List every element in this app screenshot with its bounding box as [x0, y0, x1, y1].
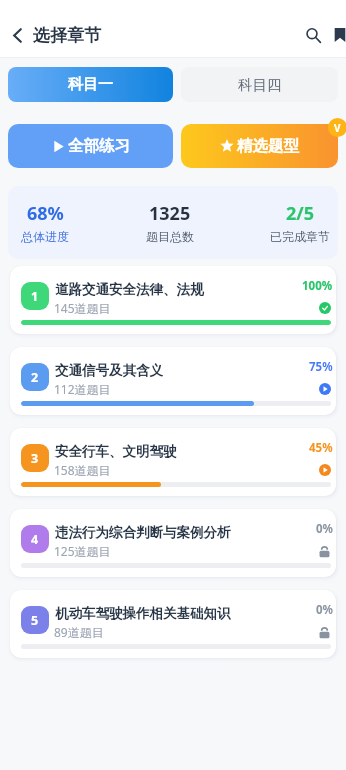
- staticText: 总体进度: [21, 229, 69, 244]
- staticText: 选择章节: [33, 25, 101, 46]
- staticText: 45%: [309, 440, 333, 456]
- staticText: 89道题目: [54, 624, 104, 640]
- staticText: 158道题目: [54, 462, 111, 478]
- staticText: 科目一: [68, 75, 113, 94]
- button[interactable]: 1: [10, 266, 336, 334]
- button[interactable]: 科目四: [181, 67, 338, 102]
- button[interactable]: Back: [2, 20, 32, 50]
- staticText: 0%: [316, 602, 333, 618]
- staticText: 机动车驾驶操作相关基础知识: [55, 605, 231, 622]
- staticText: 已完成章节: [270, 229, 330, 244]
- staticText: 68%: [27, 201, 64, 226]
- button[interactable]: 2: [10, 347, 336, 415]
- staticText: 1325: [149, 201, 191, 226]
- staticText: 100%: [302, 278, 333, 294]
- staticText: 75%: [309, 359, 333, 375]
- staticText: 安全行车、文明驾驶: [55, 443, 177, 460]
- button[interactable]: 3: [10, 428, 336, 496]
- staticText: 4: [31, 531, 39, 548]
- staticText: 2: [31, 369, 39, 386]
- staticText: 112道题目: [54, 381, 111, 397]
- staticText: 145道题目: [54, 300, 111, 316]
- staticText: 5: [31, 612, 39, 629]
- button[interactable]: 4: [10, 509, 336, 577]
- staticText: 精选题型: [237, 136, 299, 156]
- button[interactable]: 科目一: [8, 67, 173, 102]
- staticText: 交通信号及其含义: [55, 362, 163, 379]
- staticText: 3: [31, 450, 39, 467]
- staticText: 1: [31, 288, 39, 305]
- staticText: 道路交通安全法律、法规: [55, 281, 204, 298]
- button[interactable]: 全部练习: [8, 124, 173, 168]
- staticText: 125道题目: [54, 543, 111, 559]
- staticText: 违法行为综合判断与案例分析: [55, 524, 231, 541]
- staticText: 科目四: [238, 76, 282, 94]
- staticText: 全部练习: [68, 136, 130, 156]
- button[interactable]: 5: [10, 590, 336, 658]
- staticText: V: [334, 121, 341, 135]
- staticText: 0%: [316, 521, 333, 537]
- button[interactable]: 精选题型: [181, 124, 338, 168]
- button[interactable]: Search: [299, 21, 327, 49]
- staticText: 2/5: [286, 201, 315, 226]
- button[interactable]: Bookmark: [326, 21, 346, 49]
- staticText: 题目总数: [146, 229, 194, 244]
